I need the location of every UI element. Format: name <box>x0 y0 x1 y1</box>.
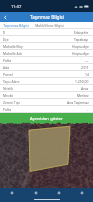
staticText: - <box>87 107 89 112</box>
button[interactable]: Pafta <box>0 106 93 113</box>
staticText: Pafta <box>3 58 12 63</box>
staticText: Merkez <box>77 93 89 98</box>
button[interactable]: Parsel <box>0 71 93 78</box>
button[interactable]: Zemin Tipi <box>0 99 93 106</box>
button[interactable]: Ada <box>0 64 93 71</box>
button[interactable]: Mahalle/Köy <box>0 43 93 50</box>
staticText: İl <box>3 30 6 35</box>
staticText: Taşınmaz Bilgisi <box>30 14 64 20</box>
staticText: Tepebaşı <box>74 37 89 42</box>
button[interactable]: Pafta <box>0 57 93 64</box>
button[interactable]: Taşınmaz Bilgisi <box>3 22 29 28</box>
staticText: 11:07 <box>11 4 22 9</box>
staticText: Nitelik <box>3 86 14 91</box>
staticText: Tapu Alanı <box>3 79 20 84</box>
staticText: Parsel <box>3 72 13 77</box>
staticText: Eskişehir <box>74 30 89 35</box>
button[interactable]: İl <box>0 29 93 36</box>
staticText: Mahalle/Köy <box>3 44 23 49</box>
staticText: Ada <box>3 65 10 70</box>
staticText: Mevkii <box>3 93 14 98</box>
button[interactable]: Malik/Hisse Bilgisi <box>35 22 64 28</box>
button[interactable]: Back <box>0 12 10 22</box>
button[interactable]: Tapu Alanı <box>0 78 93 85</box>
button[interactable]: Ayrıntıları göster <box>0 113 93 124</box>
staticText: Malik/Hisse Bilgisi <box>35 23 64 28</box>
button[interactable]: Katman <box>24 188 47 197</box>
button[interactable]: Menü <box>70 188 93 197</box>
button[interactable]: Mahalle Adı <box>0 50 93 57</box>
staticText: — <box>85 58 89 63</box>
staticText: Ayrıntıları göster <box>30 116 63 122</box>
staticText: 14 <box>85 72 89 77</box>
staticText: Mahalle Adı <box>3 51 22 56</box>
staticText: Hoşnudiye <box>72 44 89 49</box>
staticText: 2311 <box>81 65 89 70</box>
staticText: Ana Taşınmaz <box>67 100 89 105</box>
staticText: İlçe <box>3 37 9 42</box>
staticText: Arsa <box>81 86 89 91</box>
button[interactable]: Ara <box>47 188 70 197</box>
button[interactable]: İlçe <box>0 36 93 43</box>
button[interactable]: Harita <box>0 188 24 197</box>
staticText: 1.250,00 <box>75 79 89 84</box>
button[interactable]: Nitelik <box>0 85 93 92</box>
staticText: Pafta <box>3 107 12 112</box>
staticText: Zemin Tipi <box>3 100 20 105</box>
button[interactable]: Mevkii <box>0 92 93 99</box>
staticText: Hoşnudiye <box>72 51 89 56</box>
staticText: Taşınmaz Bilgisi <box>3 23 29 28</box>
